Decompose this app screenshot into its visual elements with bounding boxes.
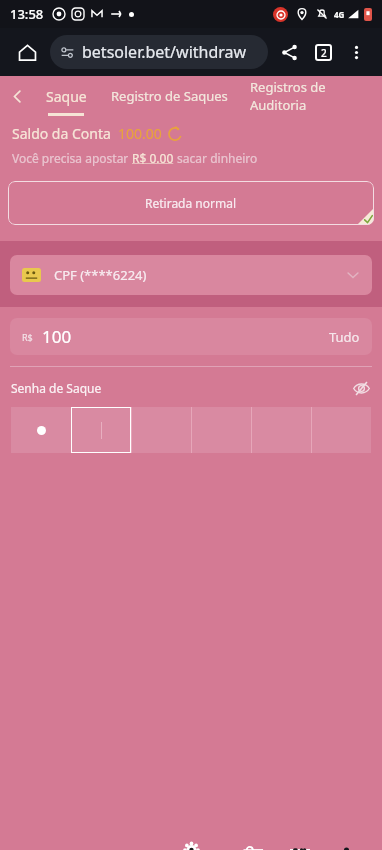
- staticText: Retirada normal: [145, 195, 237, 211]
- button[interactable]: Registro de Saques: [99, 76, 240, 116]
- staticText: R$: [22, 331, 33, 343]
- staticText: 13:58: [10, 5, 44, 23]
- staticText: 2: [321, 46, 327, 60]
- button[interactable]: Tabs: [306, 35, 340, 69]
- button[interactable]: More options: [340, 36, 372, 68]
- button[interactable]: betsoler.bet/withdraw: [50, 35, 268, 69]
- staticText: R$ 0.00: [132, 150, 174, 166]
- button[interactable]: Registros de Auditoria: [240, 76, 382, 116]
- button[interactable]: [251, 407, 311, 453]
- staticText: 100.00: [118, 124, 162, 143]
- staticText: Registro de Saques: [111, 87, 228, 105]
- button[interactable]: Retirada normal: [8, 181, 374, 225]
- button[interactable]: Toggle password visibility: [351, 378, 371, 398]
- button[interactable]: CPF (****6224): [10, 255, 372, 295]
- staticText: 4G: [334, 9, 345, 20]
- button[interactable]: R$: [10, 318, 372, 355]
- button[interactable]: [311, 407, 371, 453]
- button[interactable]: Saque: [34, 76, 99, 116]
- staticText: Registros de Auditoria: [250, 78, 372, 114]
- button[interactable]: [191, 407, 251, 453]
- staticText: Senha de Saque: [11, 380, 102, 396]
- staticText: Saque: [46, 87, 87, 106]
- staticText: Você precisa apostar: [12, 150, 132, 166]
- button[interactable]: Home: [10, 35, 44, 69]
- button[interactable]: [71, 407, 131, 453]
- button[interactable]: Back: [0, 76, 34, 116]
- staticText: Tudo: [329, 328, 360, 346]
- button[interactable]: [131, 407, 191, 453]
- staticText: 100: [42, 325, 72, 348]
- staticText: CPF (****6224): [54, 266, 147, 284]
- staticText: Saldo da Conta: [12, 124, 111, 143]
- staticText: betsoler.bet/withdraw: [82, 41, 247, 63]
- button[interactable]: Refresh: [167, 126, 183, 142]
- staticText: sacar dinheiro: [174, 150, 258, 166]
- button[interactable]: Share: [272, 35, 306, 69]
- button[interactable]: [11, 407, 71, 453]
